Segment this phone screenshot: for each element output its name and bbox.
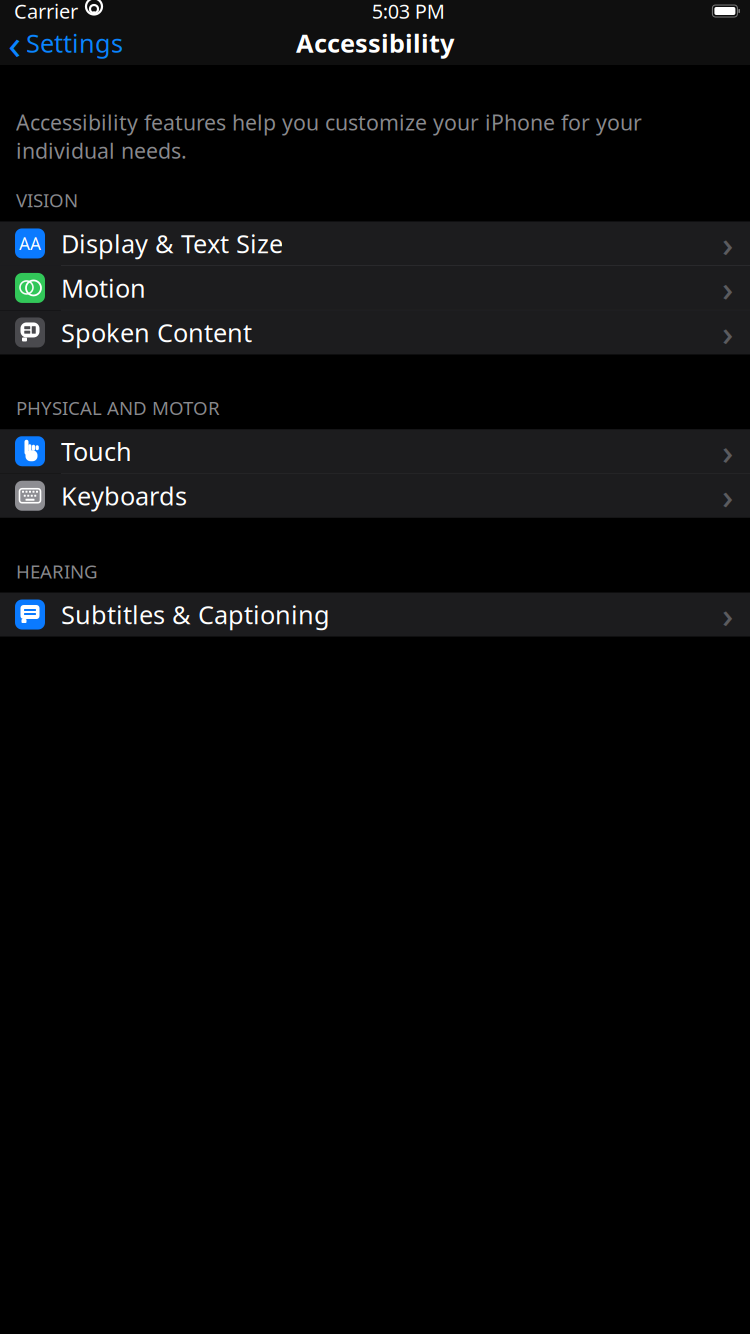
button[interactable]: ‹ [0,21,131,65]
staticText: Accessibility features help you customiz… [16,108,642,165]
staticText: › [722,591,733,637]
staticText: Motion [61,271,146,305]
staticText: › [722,265,733,311]
button[interactable]: Motion [0,266,750,310]
staticText: HEARING [16,559,98,583]
staticText: AA [19,232,41,255]
staticText: › [722,473,733,519]
staticText: Keyboards [61,479,187,512]
button[interactable]: Touch [0,429,750,474]
staticText: › [722,428,733,474]
staticText: Subtitles & Captioning [61,598,330,631]
staticText: 5:03 PM [372,0,445,24]
button[interactable]: Spoken Content [0,310,750,354]
staticText: PHYSICAL AND MOTOR [16,395,220,420]
staticText: VISION [16,188,78,212]
button[interactable]: Subtitles & Captioning [0,592,750,636]
staticText: Carrier [14,0,78,24]
button[interactable]: AA [0,221,750,266]
staticText: Settings [26,26,123,60]
staticText: › [722,309,733,355]
staticText: ‹ [8,15,21,71]
staticText: Accessibility [296,26,454,60]
staticText: Display & Text Size [61,227,283,260]
staticText: Spoken Content [61,316,252,349]
staticText: Touch [61,434,132,468]
button[interactable]: Keyboards [0,474,750,518]
staticText: › [722,220,733,266]
